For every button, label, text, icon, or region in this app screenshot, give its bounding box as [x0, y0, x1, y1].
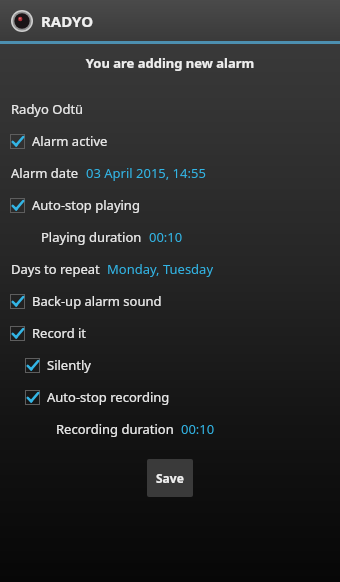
- staticText: Playing duration: [41, 228, 142, 246]
- staticText: RADYO: [41, 11, 94, 31]
- button[interactable]: Save: [147, 459, 193, 497]
- button[interactable]: Alarm active: [0, 125, 340, 157]
- staticText: Alarm active: [32, 132, 108, 150]
- staticText: Alarm date: [11, 164, 79, 182]
- staticText: 03 April 2015, 14:55: [86, 164, 206, 182]
- staticText: Days to repeat: [11, 260, 100, 278]
- button[interactable]: Playing duration: [0, 221, 340, 253]
- staticText: You are adding new alarm: [0, 54, 340, 72]
- staticText: Auto-stop recording: [47, 388, 170, 406]
- staticText: 00:10: [149, 228, 183, 246]
- other: Radyo app icon: [11, 10, 33, 32]
- button[interactable]: Days to repeat: [0, 253, 340, 285]
- staticText: Record it: [32, 324, 87, 342]
- staticText: 00:10: [181, 420, 215, 438]
- button[interactable]: Silently: [0, 349, 340, 381]
- staticText: Auto-stop playing: [32, 196, 140, 214]
- button[interactable]: Back-up alarm sound: [0, 285, 340, 317]
- button[interactable]: Alarm date: [0, 157, 340, 189]
- staticText: Radyo Odtü: [11, 100, 84, 118]
- staticText: Silently: [47, 356, 91, 374]
- button[interactable]: Record it: [0, 317, 340, 349]
- button[interactable]: Radyo Odtü: [0, 93, 340, 125]
- staticText: Monday, Tuesday: [107, 260, 214, 278]
- staticText: Back-up alarm sound: [32, 292, 162, 310]
- staticText: Save: [156, 470, 184, 486]
- button[interactable]: Recording duration: [0, 413, 340, 445]
- button[interactable]: Auto-stop playing: [0, 189, 340, 221]
- button[interactable]: Auto-stop recording: [0, 381, 340, 413]
- staticText: Recording duration: [56, 420, 174, 438]
